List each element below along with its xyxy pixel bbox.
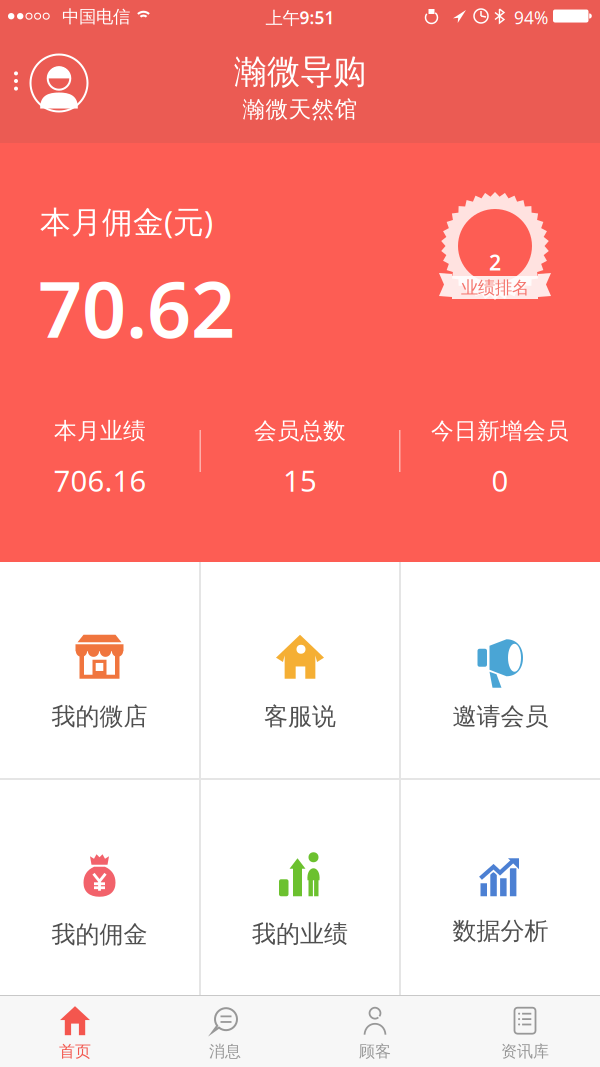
staticText: 数据分析 xyxy=(452,916,548,946)
staticText: 首页 xyxy=(59,1042,91,1061)
staticText: 706.16 xyxy=(53,461,146,500)
button[interactable]: 资讯库 xyxy=(450,995,600,1066)
staticText: 上午9:51 xyxy=(265,6,334,29)
staticText: 0 xyxy=(491,461,508,500)
staticText: 中国电信 xyxy=(62,6,130,27)
staticText: 瀚微导购 xyxy=(234,51,366,92)
staticText: 今日新增会员 xyxy=(431,417,569,445)
staticText: 邀请会员 xyxy=(452,702,548,731)
staticText: 本月佣金(元) xyxy=(40,201,213,242)
staticText: 会员总数 xyxy=(254,417,346,445)
button[interactable]: 我的业绩 xyxy=(201,780,399,995)
button[interactable]: 个人资料 xyxy=(29,53,89,113)
staticText: 94% xyxy=(514,6,548,29)
staticText: 我的业绩 xyxy=(252,919,348,949)
button[interactable]: 首页 xyxy=(0,995,150,1066)
staticText: 本月业绩 xyxy=(54,417,146,445)
button[interactable]: 我的佣金 xyxy=(0,780,199,995)
staticText: 顾客 xyxy=(359,1042,391,1061)
staticText: 我的佣金 xyxy=(51,920,147,949)
staticText: 客服说 xyxy=(264,702,336,731)
button[interactable]: 我的微店 xyxy=(0,562,199,778)
staticText: 消息 xyxy=(209,1042,241,1061)
button[interactable]: 数据分析 xyxy=(401,780,600,995)
staticText: 2 xyxy=(489,248,501,276)
button[interactable]: 邀请会员 xyxy=(401,562,600,778)
button[interactable]: 客服说 xyxy=(201,562,399,778)
button[interactable]: 消息 xyxy=(150,995,300,1066)
staticText: 瀚微天然馆 xyxy=(242,95,357,123)
staticText: 业绩排名 xyxy=(461,277,529,298)
button[interactable]: 顾客 xyxy=(300,995,450,1066)
button[interactable]: 菜单 xyxy=(8,71,24,91)
staticText: 资讯库 xyxy=(501,1042,549,1061)
staticText: 70.62 xyxy=(38,256,235,359)
staticText: 15 xyxy=(283,461,317,500)
staticText: 我的微店 xyxy=(51,702,147,731)
